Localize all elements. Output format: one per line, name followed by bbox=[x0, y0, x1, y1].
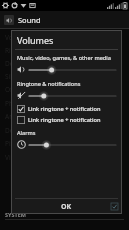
staticText: SYSTEM bbox=[5, 211, 26, 218]
staticText: Volumes bbox=[5, 33, 32, 42]
staticText: Link ringtone + notification mutes bbox=[28, 116, 116, 124]
staticText: Vibrate and ring bbox=[5, 153, 55, 162]
button[interactable]: Sound bbox=[0, 11, 129, 28]
staticText: OK bbox=[61, 202, 72, 212]
staticText: Volumes bbox=[17, 34, 54, 46]
staticText: Alarms bbox=[17, 129, 36, 137]
staticText: Off bbox=[5, 85, 15, 94]
staticText: Ringtone & notifications bbox=[17, 80, 81, 88]
staticText: Pixie Dust bbox=[5, 139, 36, 148]
staticText: Silent mode bbox=[5, 72, 42, 81]
staticText: Android bbox=[5, 112, 30, 121]
button[interactable]: Link ringtone + notification volume bbox=[17, 105, 116, 113]
button[interactable]: Volume slider bbox=[17, 90, 116, 101]
staticText: Ringtone & notifications bbox=[5, 46, 79, 55]
button[interactable]: OK bbox=[11, 199, 122, 214]
staticText: Music, video, games, & other media bbox=[17, 54, 111, 62]
staticText: Default notification bbox=[5, 126, 64, 135]
staticText: Sound bbox=[18, 15, 41, 25]
staticText: Default notification bbox=[5, 59, 64, 68]
button[interactable]: Volume slider bbox=[17, 139, 116, 150]
staticText: Phone ringtone bbox=[5, 99, 53, 108]
button[interactable]: Volume slider bbox=[17, 64, 116, 75]
button[interactable]: Link ringtone + notification mutes bbox=[17, 116, 116, 124]
staticText: Link ringtone + notification volume bbox=[28, 105, 116, 113]
